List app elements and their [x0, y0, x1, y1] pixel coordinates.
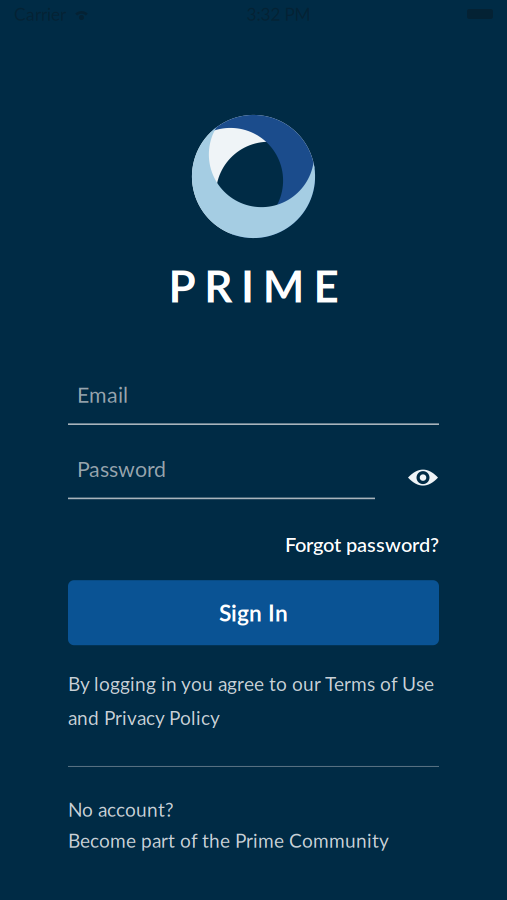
staticText: Carrier — [14, 4, 66, 24]
staticText: No account? — [68, 798, 174, 821]
button[interactable]: Sign In — [68, 580, 439, 645]
staticText: Email — [77, 382, 128, 407]
staticText: Forgot password? — [285, 532, 439, 556]
staticText: and Privacy Policy — [68, 706, 220, 729]
staticText: Become part of the Prime Community — [68, 829, 389, 852]
staticText: By logging in you agree to our Terms of … — [68, 672, 434, 695]
staticText: PRIME — [168, 259, 339, 312]
staticText: 3:32 PM — [246, 4, 310, 24]
button[interactable]: Show password — [407, 467, 439, 489]
button[interactable]: Forgot password? — [68, 532, 439, 556]
staticText: Sign In — [219, 599, 288, 626]
staticText: Password — [77, 456, 166, 482]
